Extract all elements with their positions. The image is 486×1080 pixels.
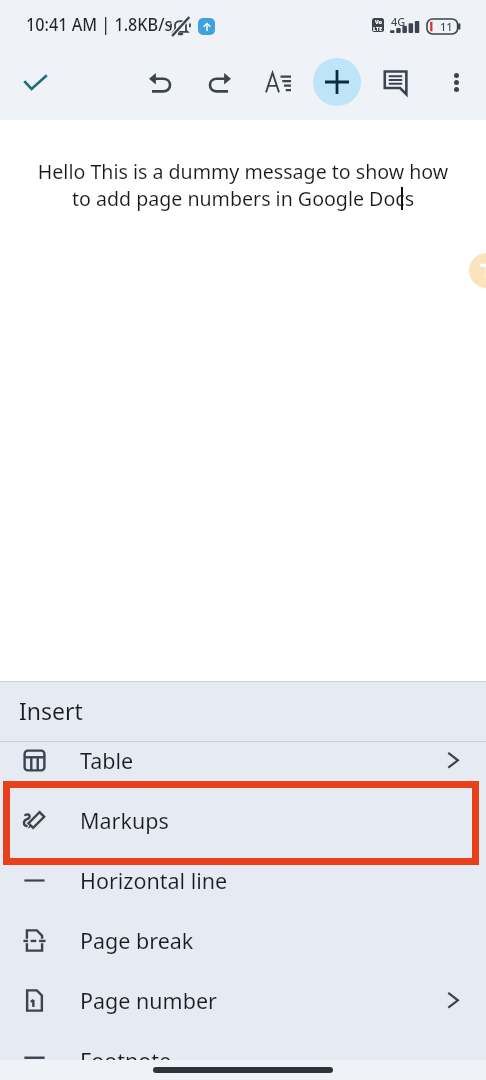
button[interactable]: Markups <box>0 790 486 850</box>
staticText: LTE <box>373 25 383 32</box>
button[interactable]: Insert <box>313 58 361 106</box>
staticText: Footnote <box>80 1046 172 1075</box>
staticText: Hello This is a dummy message to show ho… <box>0 158 486 212</box>
staticText: 4G <box>391 14 406 29</box>
button[interactable]: Comments <box>373 58 421 106</box>
button[interactable]: Page number <box>0 970 486 1030</box>
staticText: Insert <box>19 695 83 726</box>
button[interactable]: Footnote <box>0 1030 486 1080</box>
staticText: Page number <box>80 986 217 1015</box>
button[interactable]: Undo <box>136 58 184 106</box>
staticText: Page break <box>80 926 194 955</box>
staticText: Table <box>80 746 134 775</box>
button[interactable]: Table <box>0 730 486 790</box>
staticText: 10:41 AM | 1.8KB/s <box>26 11 173 36</box>
button[interactable]: Horizontal line <box>0 850 486 910</box>
staticText: Markups <box>80 806 169 835</box>
button[interactable]: Done <box>11 58 59 106</box>
button[interactable]: More options <box>432 58 480 106</box>
staticText: 11 <box>440 19 453 34</box>
staticText: Horizontal line <box>80 866 228 895</box>
button[interactable]: Redo <box>195 58 243 106</box>
button[interactable]: Page break <box>0 910 486 970</box>
staticText: Vo <box>375 18 382 25</box>
button[interactable]: Text formatting <box>254 58 302 106</box>
